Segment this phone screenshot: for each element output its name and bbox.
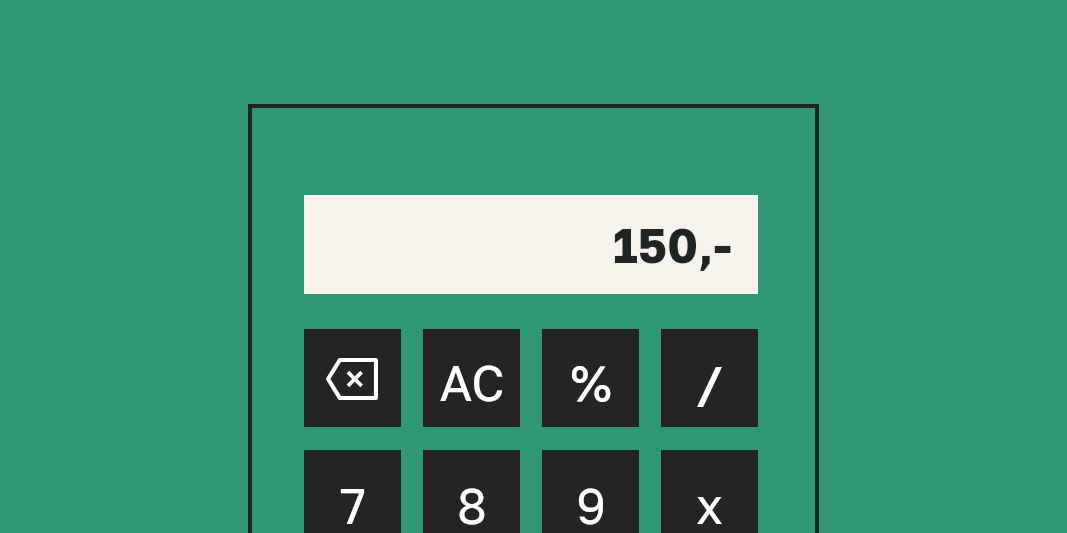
staticText: 150,- — [613, 216, 732, 274]
button[interactable]: 150,- — [304, 195, 758, 294]
button[interactable]: 9 — [542, 450, 639, 533]
staticText: % — [570, 353, 612, 412]
button[interactable]: Backspace — [304, 329, 401, 427]
button[interactable]: x — [661, 450, 758, 533]
staticText: 9 — [576, 476, 606, 533]
staticText: 7 — [340, 476, 366, 533]
staticText: AC — [439, 353, 505, 412]
button[interactable]: AC — [423, 329, 520, 427]
staticText: 8 — [457, 476, 487, 533]
button[interactable]: Divide — [661, 329, 758, 427]
button[interactable]: 7 — [304, 450, 401, 533]
button[interactable]: 8 — [423, 450, 520, 533]
button[interactable]: % — [542, 329, 639, 427]
staticText: x — [696, 476, 723, 533]
